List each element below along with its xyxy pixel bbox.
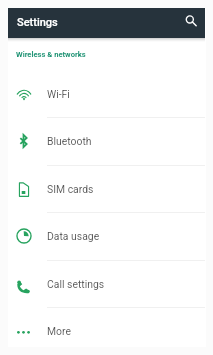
button[interactable]: SIM cards <box>0 166 213 214</box>
staticText: Call settings <box>47 278 105 290</box>
button[interactable]: Bluetooth <box>0 118 213 166</box>
button[interactable]: Wi-Fi <box>0 71 213 119</box>
staticText: Wireless & networks <box>16 50 86 59</box>
staticText: Bluetooth <box>47 135 92 147</box>
button[interactable]: Search <box>175 8 205 38</box>
staticText: Wi-Fi <box>47 88 70 100</box>
staticText: SIM cards <box>47 183 94 195</box>
staticText: Settings <box>17 16 58 29</box>
staticText: Data usage <box>47 230 100 242</box>
staticText: More <box>47 325 71 337</box>
button[interactable]: More <box>0 308 213 355</box>
button[interactable]: Call settings <box>0 261 213 309</box>
button[interactable]: Data usage <box>0 213 213 261</box>
